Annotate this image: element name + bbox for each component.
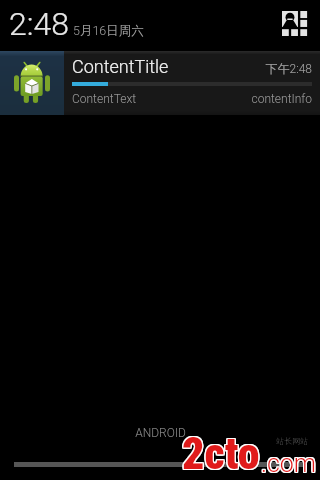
staticText: 2cto bbox=[181, 429, 259, 480]
staticText: 2cto bbox=[183, 427, 261, 479]
staticText: 2cto bbox=[182, 427, 260, 479]
staticText: .com bbox=[260, 449, 316, 478]
staticText: ANDROID bbox=[135, 426, 186, 440]
button[interactable]: Drag handle bbox=[14, 462, 306, 467]
staticText: 5月16日周六 bbox=[73, 23, 144, 39]
staticText: 2cto bbox=[183, 428, 261, 480]
staticText: .com bbox=[262, 449, 318, 478]
staticText: 2:48 bbox=[9, 5, 69, 43]
staticText: 下午2:48 bbox=[200, 61, 312, 76]
staticText: .com bbox=[261, 450, 317, 479]
button[interactable]: ContentTitle bbox=[0, 51, 320, 115]
staticText: .com bbox=[262, 450, 318, 479]
staticText: 站长网站 bbox=[276, 436, 308, 446]
staticText: .com bbox=[260, 450, 316, 479]
button[interactable]: Quick settings bbox=[282, 11, 307, 36]
staticText: ContentText bbox=[72, 92, 137, 106]
staticText: 2cto bbox=[183, 429, 261, 480]
staticText: .com bbox=[260, 448, 316, 477]
staticText: .com bbox=[262, 448, 318, 477]
staticText: 2cto bbox=[182, 428, 260, 480]
staticText: 2cto bbox=[182, 429, 260, 480]
staticText: .com bbox=[261, 448, 317, 477]
staticText: contentInfo bbox=[200, 92, 312, 106]
staticText: .com bbox=[261, 449, 317, 478]
staticText: 2cto bbox=[181, 428, 259, 480]
staticText: 2cto bbox=[181, 427, 259, 479]
staticText: ContentTitle bbox=[72, 56, 169, 77]
